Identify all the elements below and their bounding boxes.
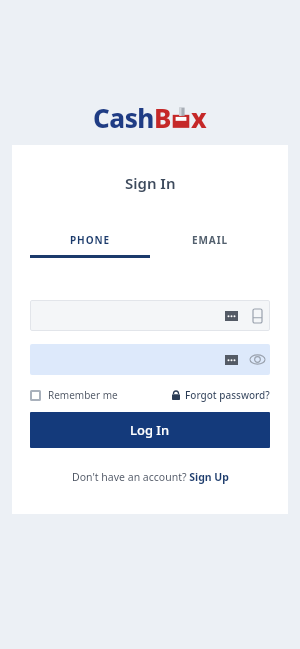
staticText: PHONE: [70, 233, 110, 247]
button[interactable]: Field action: [30, 300, 270, 331]
button[interactable]: Field action: [30, 344, 270, 375]
button[interactable]: Don't have an account? Sign Up: [12, 470, 288, 484]
button[interactable]: PHONE: [30, 233, 150, 258]
staticText: B: [154, 100, 171, 135]
staticText: Remember me: [48, 388, 118, 402]
button[interactable]: EMAIL: [150, 233, 270, 258]
staticText: Sign In: [125, 173, 176, 193]
staticText: Forgot password?: [185, 388, 270, 402]
button[interactable]: Field action: [244, 344, 270, 375]
staticText: Log In: [130, 421, 170, 439]
staticText: x: [191, 100, 207, 135]
button[interactable]: Remember me: [30, 388, 118, 402]
button[interactable]: Field action: [244, 300, 270, 331]
staticText: Don't have an account? Sign Up: [72, 470, 229, 484]
button[interactable]: Forgot password?: [172, 388, 270, 402]
staticText: EMAIL: [192, 233, 228, 247]
button[interactable]: Log In: [30, 412, 270, 448]
staticText: Cash: [93, 100, 154, 135]
